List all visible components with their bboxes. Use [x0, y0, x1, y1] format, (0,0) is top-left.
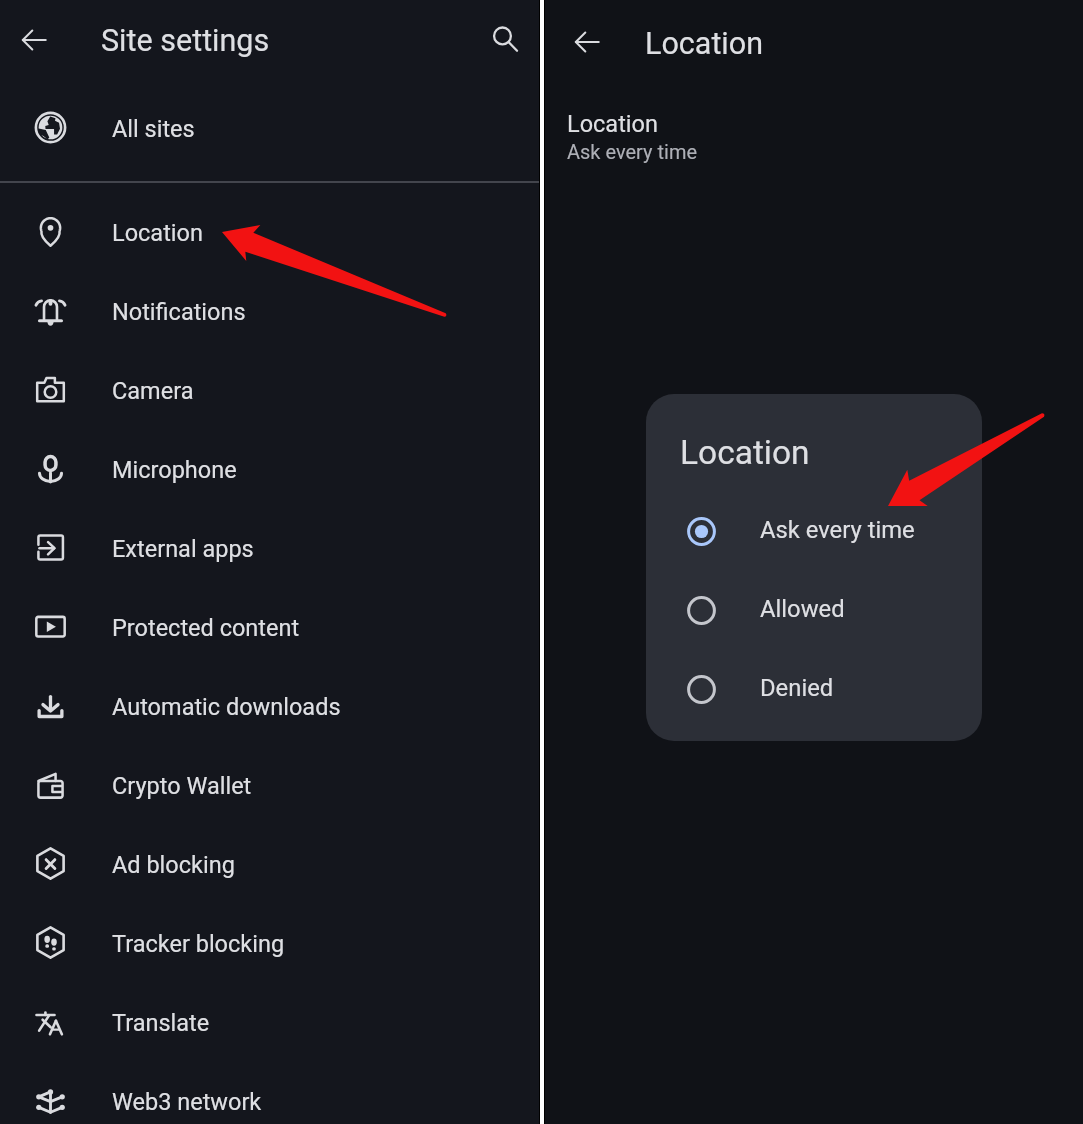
staticText: Camera	[112, 377, 194, 405]
staticText: Location	[567, 110, 658, 138]
button[interactable]: Translate	[0, 982, 539, 1061]
button[interactable]: Web3 network	[0, 1061, 539, 1124]
staticText: Denied	[760, 674, 834, 702]
button[interactable]: Automatic downloads	[0, 666, 539, 745]
staticText: Ask every time	[760, 516, 915, 544]
staticText: Ad blocking	[112, 851, 235, 879]
staticText: Protected content	[112, 614, 300, 642]
button[interactable]: Microphone	[0, 429, 539, 508]
button[interactable]: Back	[564, 19, 610, 65]
button[interactable]: Camera	[0, 350, 539, 429]
staticText: External apps	[112, 535, 254, 563]
staticText: Location	[645, 26, 764, 62]
staticText: Notifications	[112, 298, 246, 326]
button[interactable]: Protected content	[0, 587, 539, 666]
button[interactable]: Tracker blocking	[0, 903, 539, 982]
button[interactable]: Ad blocking	[0, 824, 539, 903]
button[interactable]: All sites	[0, 88, 539, 167]
staticText: Automatic downloads	[112, 693, 341, 721]
button[interactable]: Location	[0, 192, 539, 271]
staticText: Location	[112, 219, 203, 247]
button[interactable]: Notifications	[0, 271, 539, 350]
button[interactable]: Denied	[646, 659, 982, 719]
staticText: Crypto Wallet	[112, 772, 252, 800]
staticText: Site settings	[101, 23, 270, 59]
staticText: Microphone	[112, 456, 237, 484]
staticText: Ask every time	[567, 140, 698, 163]
button[interactable]: Search	[482, 16, 528, 62]
staticText: All sites	[112, 115, 195, 143]
button[interactable]: Ask every time	[646, 501, 982, 561]
button[interactable]: Back	[11, 17, 57, 63]
staticText: Translate	[112, 1009, 210, 1037]
button[interactable]: Crypto Wallet	[0, 745, 539, 824]
staticText: Allowed	[760, 595, 845, 623]
staticText: Web3 network	[112, 1088, 262, 1116]
staticText: Location	[680, 433, 810, 472]
staticText: Tracker blocking	[112, 930, 285, 958]
button[interactable]: Allowed	[646, 580, 982, 640]
button[interactable]: External apps	[0, 508, 539, 587]
